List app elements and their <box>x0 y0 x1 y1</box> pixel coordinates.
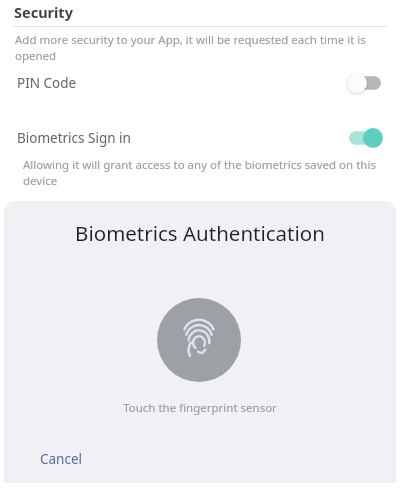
button[interactable]: Fingerprint sensor <box>157 298 241 382</box>
button[interactable]: Cancel <box>26 443 97 475</box>
staticText: Touch the fingerprint sensor <box>4 400 396 416</box>
staticText: Security <box>14 2 73 22</box>
staticText: Add more security to your App, it will b… <box>15 32 384 63</box>
button[interactable]: Biometrics Sign in toggle <box>342 125 388 151</box>
staticText: Biometrics Sign in <box>17 129 131 147</box>
staticText: Allowing it will grant access to any of … <box>23 157 384 188</box>
button[interactable]: PIN Code <box>0 70 400 96</box>
staticText: Cancel <box>40 450 83 468</box>
staticText: Biometrics Authentication <box>4 219 396 247</box>
button[interactable]: PIN Code toggle <box>342 70 388 96</box>
button[interactable]: Biometrics Sign in <box>0 125 400 151</box>
staticText: PIN Code <box>17 74 77 92</box>
